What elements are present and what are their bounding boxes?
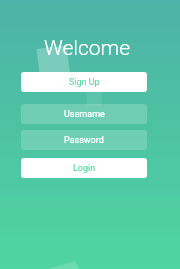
staticText: Welcome (0, 36, 177, 61)
button[interactable]: Password (21, 130, 147, 150)
button[interactable]: Sign Up (21, 72, 147, 92)
staticText: Sign Up (69, 77, 100, 88)
staticText: Login (73, 163, 96, 174)
staticText: Username (64, 109, 105, 120)
button[interactable]: Username (21, 104, 147, 124)
button[interactable]: Login (21, 158, 147, 178)
staticText: Password (64, 135, 104, 146)
